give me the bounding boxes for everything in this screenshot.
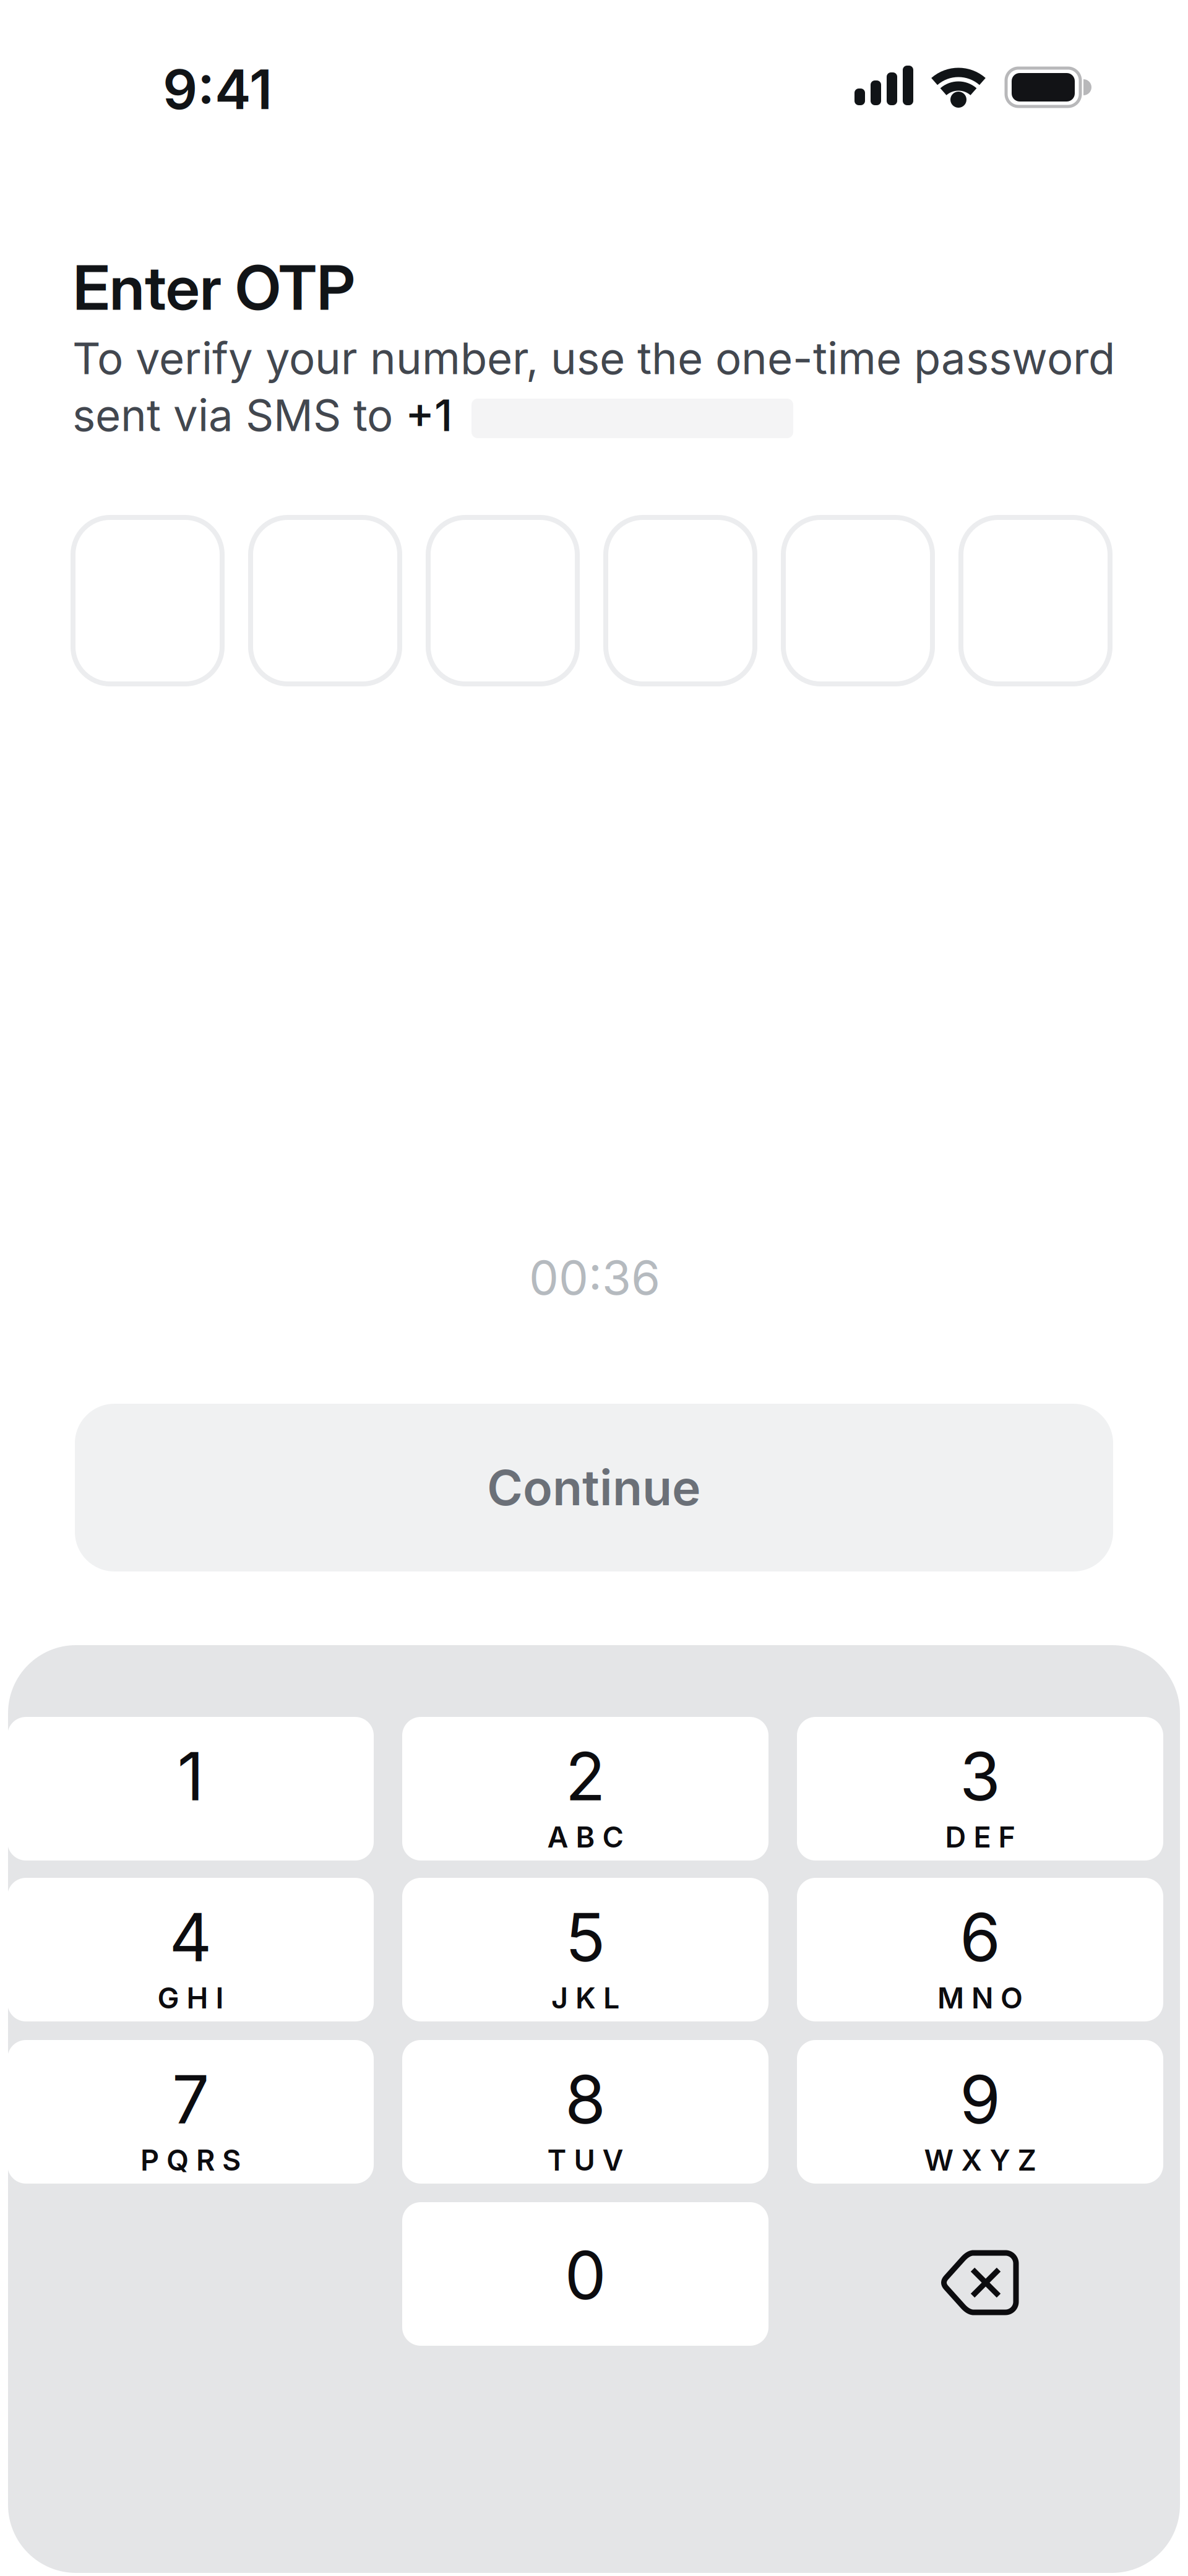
button[interactable]: 0 bbox=[402, 2202, 768, 2346]
staticText: 7 bbox=[172, 2060, 209, 2139]
staticText: To verify your number, use the one-time … bbox=[72, 332, 1115, 385]
button[interactable]: Continue bbox=[75, 1404, 1113, 1571]
button[interactable]: 4 bbox=[7, 1878, 374, 2021]
button[interactable]: 2 bbox=[402, 1717, 768, 1861]
button[interactable]: 3 bbox=[797, 1717, 1163, 1861]
button[interactable]: 1 bbox=[7, 1717, 374, 1861]
staticText: W X Y Z bbox=[924, 2143, 1036, 2178]
staticText: 0 bbox=[565, 2235, 606, 2315]
staticText: 6 bbox=[960, 1897, 1001, 1977]
staticText: M N O bbox=[937, 1980, 1023, 2015]
staticText: J K L bbox=[551, 1980, 619, 2015]
button[interactable]: 5 bbox=[402, 1878, 768, 2021]
button[interactable]: One-time passcode entry bbox=[73, 517, 1110, 684]
staticText: 4 bbox=[169, 1897, 212, 1977]
button[interactable]: 9 bbox=[797, 2040, 1163, 2184]
button[interactable]: 7 bbox=[7, 2040, 374, 2184]
staticText: sent via SMS to bbox=[72, 389, 405, 442]
staticText: 1 bbox=[177, 1736, 204, 1816]
button[interactable]: 6 bbox=[797, 1878, 1163, 2021]
staticText: P Q R S bbox=[140, 2143, 241, 2178]
staticText: 9 bbox=[960, 2060, 1001, 2139]
staticText: 5 bbox=[565, 1897, 605, 1977]
staticText: A B C bbox=[547, 1820, 623, 1855]
staticText: 9:41 bbox=[163, 56, 272, 122]
staticText: 8 bbox=[565, 2060, 606, 2139]
staticText: 00:36 bbox=[529, 1249, 660, 1306]
button[interactable]: Delete bbox=[905, 2206, 1053, 2349]
staticText: +1 bbox=[405, 389, 452, 442]
button[interactable]: 8 bbox=[402, 2040, 768, 2184]
staticText: T U V bbox=[547, 2143, 623, 2178]
staticText: G H I bbox=[157, 1980, 224, 2015]
staticText: 2 bbox=[565, 1736, 605, 1816]
staticText: Continue bbox=[487, 1458, 701, 1517]
staticText: D E F bbox=[945, 1820, 1015, 1855]
staticText: Enter OTP bbox=[73, 251, 355, 325]
staticText: 3 bbox=[960, 1736, 1001, 1816]
